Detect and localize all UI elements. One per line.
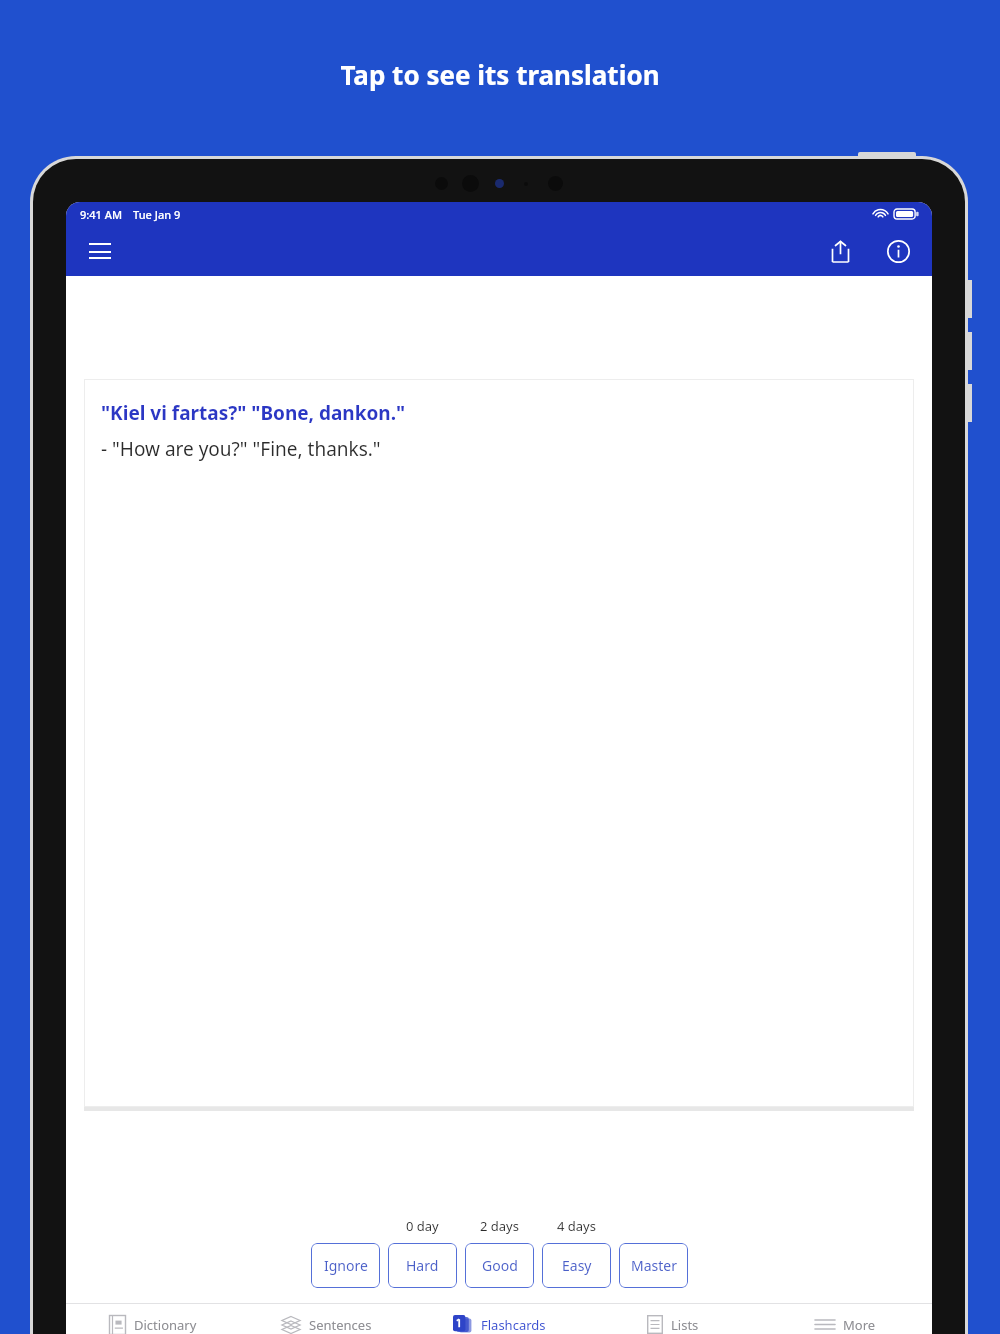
staticText: Easy (562, 1256, 592, 1275)
staticText: 2 days (480, 1217, 519, 1235)
button[interactable]: Master (619, 1243, 688, 1288)
button[interactable]: "Kiel vi fartas?" "Bone, dankon." (84, 379, 914, 1107)
button[interactable]: Dictionary (66, 1304, 240, 1334)
button[interactable]: Info (876, 229, 920, 273)
button[interactable]: Good (465, 1243, 534, 1288)
button[interactable]: Ignore (311, 1243, 380, 1288)
staticText: 9:41 AM (80, 207, 123, 222)
staticText: - "How are you?" "Fine, thanks." (101, 436, 381, 462)
button[interactable]: Sentences (240, 1304, 413, 1334)
button[interactable]: Easy (542, 1243, 611, 1288)
staticText: Dictionary (134, 1316, 197, 1334)
staticText: Flashcards (481, 1316, 546, 1334)
button[interactable]: Share (818, 229, 862, 273)
button[interactable]: Hard (388, 1243, 457, 1288)
staticText: More (843, 1316, 876, 1334)
staticText: Good (482, 1256, 518, 1275)
button[interactable]: Menu (78, 229, 122, 273)
staticText: Tap to see its translation (340, 57, 660, 92)
button[interactable]: More (759, 1304, 932, 1334)
button[interactable]: Flashcards (413, 1304, 586, 1334)
staticText: 0 day (406, 1217, 439, 1235)
staticText: Master (631, 1256, 677, 1275)
staticText: 4 days (557, 1217, 596, 1235)
staticText: Tue Jan 9 (133, 207, 181, 222)
staticText: Ignore (324, 1256, 368, 1275)
staticText: Hard (406, 1256, 439, 1275)
staticText: Lists (671, 1316, 699, 1334)
staticText: Sentences (309, 1316, 372, 1334)
staticText: "Kiel vi fartas?" "Bone, dankon." (101, 400, 406, 426)
button[interactable]: Lists (586, 1304, 759, 1334)
